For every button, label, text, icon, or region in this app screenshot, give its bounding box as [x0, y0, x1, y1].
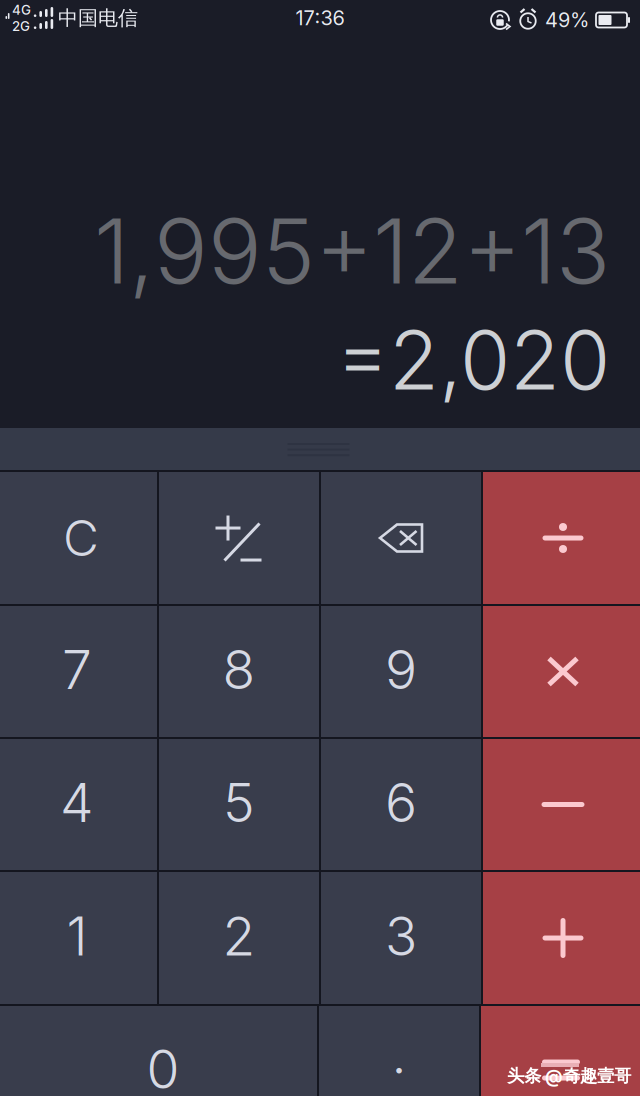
- staticText: 1,995+12+13: [94, 197, 610, 305]
- staticText: 17:36: [295, 6, 344, 30]
- staticText: 头条 @奇趣壹哥: [507, 1065, 631, 1087]
- button[interactable]: Delete: [321, 472, 481, 604]
- staticText: 5: [223, 770, 255, 835]
- staticText: .: [391, 1022, 406, 1086]
- button[interactable]: Minus: [483, 739, 640, 870]
- staticText: 中国电信: [58, 5, 138, 31]
- button[interactable]: C: [0, 472, 157, 604]
- button[interactable]: Plus: [483, 872, 640, 1004]
- staticText: 2G: [12, 18, 30, 34]
- button[interactable]: Divide: [483, 472, 640, 604]
- button[interactable]: 9: [321, 606, 481, 737]
- button[interactable]: Multiply: [483, 606, 640, 737]
- staticText: 2: [222, 904, 255, 968]
- button[interactable]: 5: [159, 739, 319, 870]
- staticText: 0: [146, 1037, 179, 1096]
- button[interactable]: 0: [0, 1006, 317, 1096]
- staticText: 7: [62, 637, 92, 702]
- staticText: 8: [222, 637, 255, 702]
- staticText: =2,020: [336, 311, 610, 409]
- button[interactable]: Equals: [481, 1006, 640, 1096]
- staticText: C: [63, 508, 99, 568]
- button[interactable]: 1: [0, 872, 157, 1004]
- button[interactable]: 8: [159, 606, 319, 737]
- button[interactable]: 4: [0, 739, 157, 870]
- staticText: 49%: [545, 8, 589, 32]
- button[interactable]: 7: [0, 606, 157, 737]
- staticText: 4: [60, 770, 94, 835]
- button[interactable]: Plus or minus: [159, 472, 319, 604]
- button[interactable]: .: [319, 1006, 479, 1096]
- staticText: 9: [385, 637, 417, 702]
- staticText: 4G: [12, 2, 31, 18]
- staticText: 1: [66, 904, 87, 968]
- button[interactable]: 2: [159, 872, 319, 1004]
- button[interactable]: 6: [321, 739, 481, 870]
- button[interactable]: 3: [321, 872, 481, 1004]
- staticText: 3: [385, 904, 417, 968]
- staticText: 6: [385, 770, 417, 835]
